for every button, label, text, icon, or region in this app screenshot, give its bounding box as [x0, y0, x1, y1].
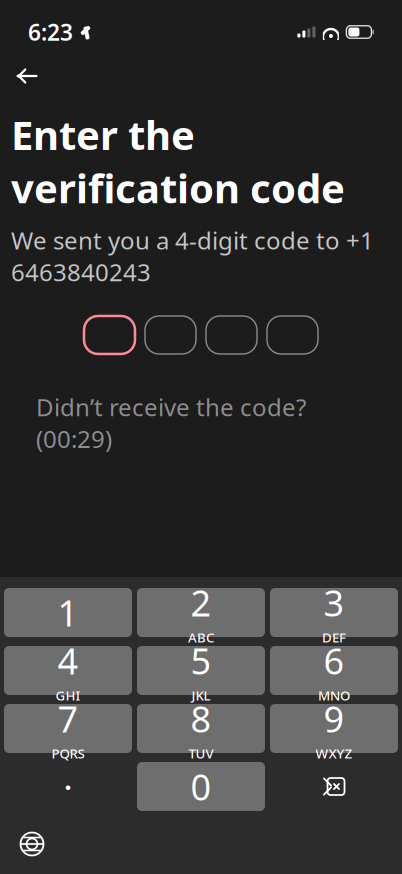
button[interactable]: Didn’t receive the code? (00:29): [36, 391, 306, 455]
button[interactable]: 0: [137, 762, 265, 811]
staticText: ABC: [188, 629, 214, 646]
staticText: 4: [57, 637, 78, 684]
button[interactable]: Delete: [270, 762, 398, 811]
button[interactable]: 1: [4, 588, 132, 637]
button[interactable]: Code digit: [145, 316, 196, 354]
button[interactable]: 6: [270, 646, 398, 695]
staticText: TUV: [188, 745, 213, 762]
staticText: 0: [190, 763, 211, 810]
staticText: WXYZ: [315, 745, 352, 762]
button[interactable]: Code digit: [206, 316, 257, 354]
staticText: 2: [190, 579, 211, 626]
staticText: DEF: [322, 629, 346, 646]
button[interactable]: 3: [270, 588, 398, 637]
button[interactable]: 5: [137, 646, 265, 695]
staticText: We sent you a 4-digit code to +1 6463840…: [11, 224, 374, 288]
staticText: 3: [323, 579, 344, 626]
button[interactable]: Code digit: [267, 316, 318, 354]
button[interactable]: 4: [4, 646, 132, 695]
button[interactable]: Next keyboard: [10, 822, 54, 866]
staticText: 1: [57, 589, 78, 636]
staticText: MNO: [318, 687, 350, 704]
button[interactable]: Period: [4, 762, 132, 811]
staticText: ·: [64, 767, 72, 806]
staticText: 9: [323, 695, 344, 742]
staticText: 5: [190, 637, 211, 684]
staticText: 7: [57, 695, 78, 742]
staticText: 6:23: [28, 17, 73, 47]
button[interactable]: 9: [270, 704, 398, 753]
staticText: 6: [323, 637, 344, 684]
button[interactable]: 2: [137, 588, 265, 637]
staticText: Enter the verification code: [11, 108, 345, 214]
staticText: JKL: [191, 687, 210, 704]
button[interactable]: Back: [5, 54, 49, 98]
button[interactable]: 7: [4, 704, 132, 753]
button[interactable]: Code digit: [84, 316, 135, 354]
button[interactable]: 8: [137, 704, 265, 753]
staticText: GHI: [55, 687, 80, 704]
staticText: PQRS: [51, 745, 84, 762]
staticText: 8: [190, 695, 211, 742]
staticText: Didn’t receive the code? (00:29): [36, 391, 306, 455]
